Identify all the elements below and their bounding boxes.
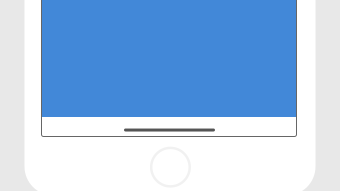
button[interactable]: Home	[151, 148, 190, 186]
